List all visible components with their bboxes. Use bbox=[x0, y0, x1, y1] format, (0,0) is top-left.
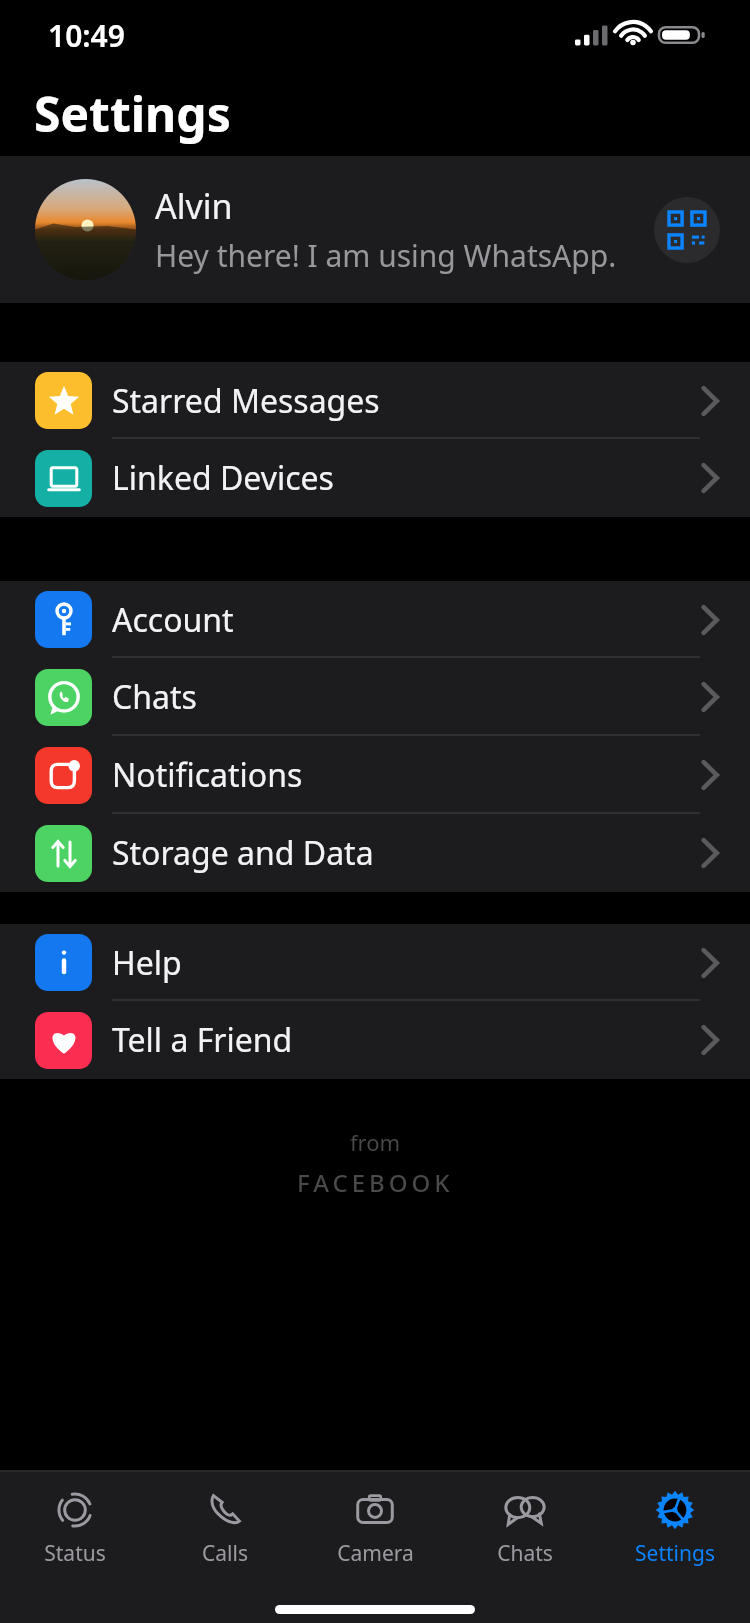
staticText: Notifications bbox=[112, 753, 303, 797]
staticText: FACEBOOK bbox=[297, 1166, 454, 1199]
button[interactable]: Tell a Friend bbox=[0, 1001, 750, 1079]
button[interactable]: Starred Messages bbox=[0, 362, 750, 439]
button[interactable]: Notifications bbox=[0, 736, 750, 814]
staticText: Status bbox=[44, 1539, 106, 1568]
staticText: Linked Devices bbox=[112, 456, 334, 500]
staticText: 10:49 bbox=[48, 15, 125, 56]
staticText: Settings bbox=[635, 1539, 715, 1568]
staticText: Calls bbox=[202, 1539, 248, 1568]
button[interactable]: Camera bbox=[300, 1472, 450, 1580]
button[interactable]: Calls bbox=[150, 1472, 300, 1580]
staticText: Tell a Friend bbox=[112, 1018, 293, 1062]
button[interactable]: Settings bbox=[600, 1472, 750, 1580]
button[interactable]: Storage and Data bbox=[0, 814, 750, 892]
staticText: Starred Messages bbox=[112, 379, 380, 423]
button[interactable]: Chats bbox=[450, 1472, 600, 1580]
button[interactable]: Status bbox=[0, 1472, 150, 1580]
button[interactable]: Help bbox=[0, 924, 750, 1001]
button[interactable]: Linked Devices bbox=[0, 439, 750, 517]
button[interactable]: Chats bbox=[0, 658, 750, 736]
staticText: Hey there! I am using WhatsApp. bbox=[155, 235, 617, 276]
button[interactable]: Alvin bbox=[0, 156, 750, 303]
staticText: Storage and Data bbox=[112, 831, 374, 875]
staticText: Help bbox=[112, 941, 182, 985]
staticText: Account bbox=[112, 598, 234, 642]
staticText: Settings bbox=[34, 81, 231, 146]
button[interactable]: Account bbox=[0, 581, 750, 658]
staticText: from bbox=[350, 1127, 401, 1157]
staticText: Chats bbox=[112, 675, 197, 719]
button[interactable]: QR code bbox=[654, 197, 720, 263]
staticText: Chats bbox=[497, 1539, 553, 1568]
staticText: Alvin bbox=[155, 183, 233, 229]
staticText: Camera bbox=[337, 1539, 414, 1568]
